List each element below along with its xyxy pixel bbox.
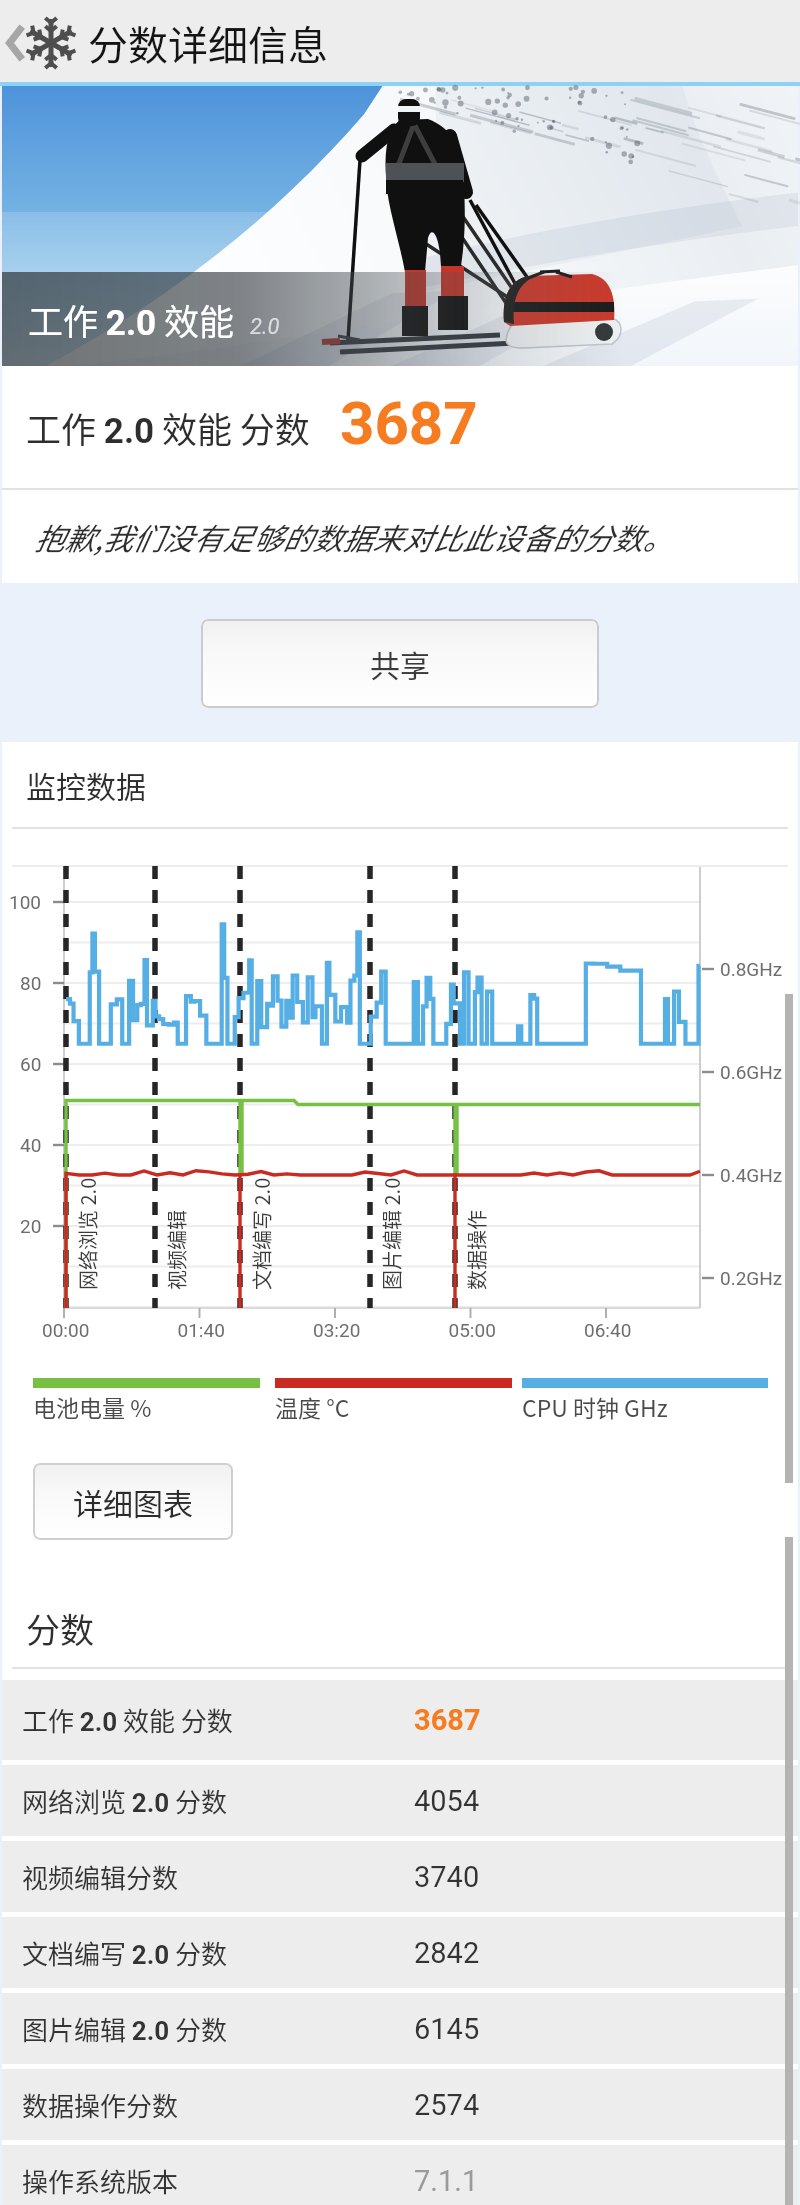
staticText: 4054 [414,1784,480,1818]
staticText: 工作 2.0 效能 分数 [22,1701,233,1739]
staticText: 文档编写 2.0 分数 [22,1934,228,1972]
staticText: 2.0 [250,314,280,340]
staticText: 网络浏览 2.0 分数 [22,1782,228,1820]
staticText: 电池电量 % [33,1390,152,1423]
staticText: 7.1.1 [414,2164,479,2198]
button[interactable]: 详细图表 [33,1463,233,1540]
staticText: 分数详细信息 [88,14,328,72]
staticText: 2574 [414,2088,480,2122]
button[interactable]: 视频编辑分数 [2,1841,798,1912]
staticText: 详细图表 [73,1480,193,1523]
button[interactable]: 共享 [201,619,599,708]
button[interactable]: 图片编辑 2.0 分数 [2,1993,798,2064]
button[interactable]: 网络浏览 2.0 分数 [2,1765,798,1836]
button[interactable]: 工作 2.0 效能 分数 [2,1680,798,1760]
staticText: 视频编辑分数 [22,1858,179,1896]
staticText: CPU 时钟 GHz [522,1390,668,1423]
staticText: 图片编辑 2.0 分数 [22,2010,228,2048]
staticText: 温度 °C [275,1390,350,1423]
button[interactable]: 文档编写 2.0 分数 [2,1917,798,1988]
staticText: 数据操作分数 [22,2086,179,2124]
staticText: 操作系统版本 [22,2162,179,2200]
staticText: 3687 [340,388,478,458]
staticText: 6145 [414,2012,480,2046]
staticText: 工作 2.0 效能 [28,294,234,345]
staticText: 监控数据 [26,763,146,806]
staticText: 工作 2.0 效能 分数 [26,402,310,453]
staticText: 3740 [414,1860,480,1894]
staticText: 抱歉,我们没有足够的数据来对比此设备的分数。 [34,515,673,558]
button[interactable]: 操作系统版本 [2,2145,798,2205]
staticText: 共享 [370,642,430,685]
staticText: 分数 [26,1604,94,1653]
staticText: 3687 [414,1703,481,1737]
staticText: 2842 [414,1936,480,1970]
button[interactable]: Back [0,0,82,86]
button[interactable]: 数据操作分数 [2,2069,798,2140]
